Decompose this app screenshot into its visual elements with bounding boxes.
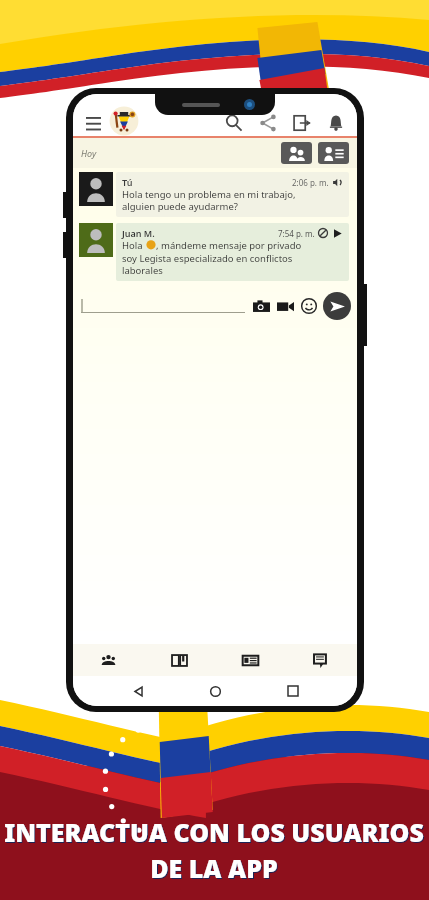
staticText: Hola tengo un problema en mi trabajo, al… bbox=[122, 188, 296, 213]
staticText: INTERACTUA CON LOS USUARIOS bbox=[5, 816, 425, 850]
button[interactable]: Tú bbox=[122, 176, 343, 213]
staticText: , mándeme mensaje por privado bbox=[156, 239, 302, 252]
staticText: Hoy bbox=[81, 147, 97, 159]
button[interactable]: Video bbox=[275, 296, 295, 316]
staticText: Tú bbox=[122, 176, 133, 188]
button[interactable]: Camera bbox=[251, 296, 271, 316]
staticText: soy Legista especializado en conflictos … bbox=[122, 252, 293, 277]
button[interactable]: Share bbox=[255, 110, 281, 136]
button[interactable]: Send bbox=[323, 292, 351, 320]
staticText: 2:06 p. m. bbox=[292, 177, 329, 188]
button[interactable] bbox=[81, 299, 245, 313]
button[interactable]: Group members bbox=[281, 142, 312, 164]
staticText: DE LA APP bbox=[151, 852, 279, 886]
button[interactable]: Contact list bbox=[318, 142, 349, 164]
button[interactable]: Recents bbox=[280, 678, 306, 704]
staticText: INTERACTUA CON LOS USUARIOS bbox=[4, 815, 424, 849]
button[interactable]: Home bbox=[202, 678, 228, 704]
button[interactable]: Guide bbox=[144, 644, 215, 676]
button[interactable]: Menu bbox=[81, 112, 105, 136]
button[interactable]: Logout bbox=[289, 110, 315, 136]
staticText: 7:54 p. m. bbox=[278, 228, 315, 239]
button[interactable]: Juan M. bbox=[122, 227, 343, 277]
staticText: Hola bbox=[122, 239, 146, 252]
button[interactable]: Chat bbox=[286, 644, 357, 676]
button[interactable]: Back bbox=[125, 678, 151, 704]
button[interactable]: Logo bbox=[109, 106, 139, 136]
button[interactable]: Emoji bbox=[299, 296, 319, 316]
staticText: Juan M. bbox=[122, 227, 155, 239]
button[interactable]: Search bbox=[221, 110, 247, 136]
button[interactable]: Community bbox=[73, 644, 144, 676]
button[interactable]: Notifications bbox=[323, 110, 349, 136]
staticText: DE LA APP bbox=[150, 851, 278, 885]
button[interactable]: News bbox=[215, 644, 286, 676]
